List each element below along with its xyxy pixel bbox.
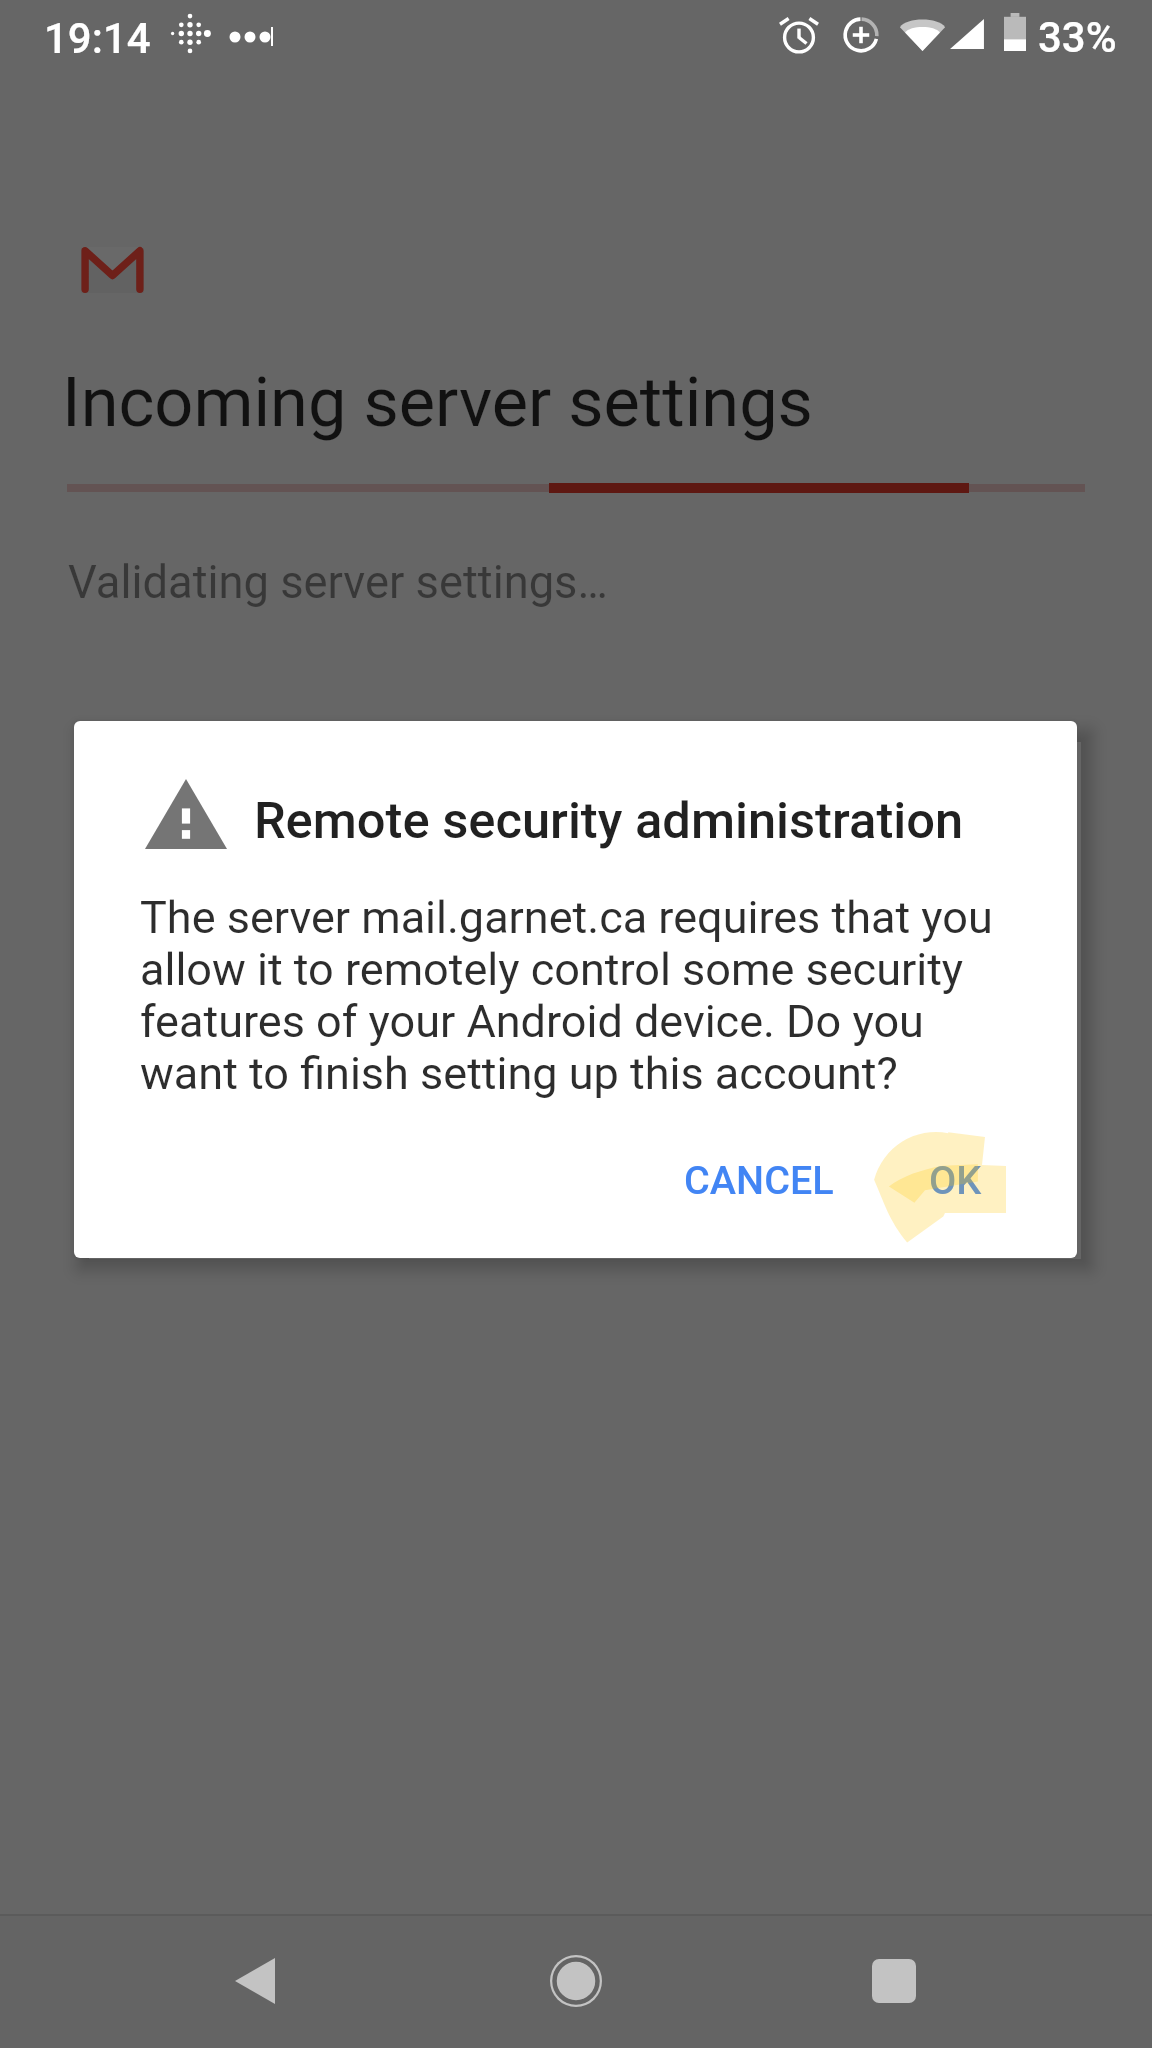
staticText: Remote security administration bbox=[254, 791, 964, 850]
staticText: CANCEL bbox=[684, 1157, 834, 1203]
staticText: 33% bbox=[1038, 13, 1117, 62]
staticText: OK bbox=[929, 1157, 982, 1203]
button[interactable]: CANCEL bbox=[652, 1131, 866, 1229]
button[interactable]: Recent apps bbox=[829, 1916, 959, 2046]
staticText: The server mail.garnet.ca requires that … bbox=[140, 891, 1010, 1100]
button[interactable]: Home bbox=[511, 1916, 641, 2046]
staticText: 19:14 bbox=[44, 14, 151, 63]
button[interactable]: OK bbox=[897, 1131, 1014, 1229]
staticText: Validating server settings… bbox=[68, 556, 608, 609]
button[interactable]: Back bbox=[190, 1916, 320, 2046]
staticText: Incoming server settings bbox=[62, 362, 813, 442]
